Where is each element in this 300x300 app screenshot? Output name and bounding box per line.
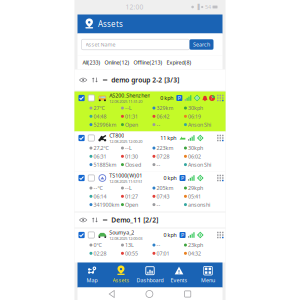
staticText: 07:01 — [156, 250, 169, 257]
staticText: 29kph — [188, 184, 203, 192]
staticText: 12.08.2025 12:00:03 — [109, 236, 142, 241]
button[interactable]: Events — [164, 266, 193, 284]
staticText: 12:00 — [125, 3, 143, 11]
staticText: 06:14 — [93, 193, 106, 200]
staticText: 23kph — [188, 241, 203, 249]
staticText: 54 — [205, 3, 211, 11]
staticText: 06:31 — [93, 153, 106, 160]
staticText: 12.08.2025 12:00:20 — [109, 139, 142, 144]
staticText: Open — [125, 121, 138, 128]
staticText: 11 kph — [160, 134, 176, 142]
staticText: --L — [125, 144, 132, 152]
staticText: 27,2°C — [93, 144, 108, 152]
staticText: 0 kph — [160, 94, 173, 102]
staticText: -- — [156, 161, 160, 168]
staticText: -- — [156, 201, 160, 208]
staticText: 205km — [156, 184, 173, 192]
staticText: Asset Name — [85, 41, 115, 48]
button[interactable]: Expired(8) — [166, 59, 191, 66]
staticText: 04:32 — [188, 250, 201, 257]
staticText: 12.08.2025 11:57:51 — [109, 179, 142, 184]
button[interactable]: demo group 2-2 [3/3] — [74, 69, 225, 90]
staticText: Map — [86, 277, 97, 284]
staticText: 06:19 — [188, 113, 201, 120]
staticText: P — [181, 174, 184, 182]
button[interactable]: Soumya_2 — [74, 228, 225, 262]
staticText: P — [181, 231, 184, 239]
staticText: Search — [193, 41, 210, 48]
staticText: Anson Shi — [188, 161, 211, 168]
button[interactable]: Online(12) — [104, 59, 129, 66]
staticText: 07:43 — [156, 193, 169, 200]
staticText: ▐ — [195, 4, 199, 10]
staticText: 00:55 — [125, 250, 138, 257]
staticText: All(233) — [82, 59, 100, 66]
staticText: Closed — [125, 161, 141, 168]
staticText: TS1000(W)01 — [109, 172, 142, 179]
button[interactable]: AS200_Shenzhen — [74, 91, 225, 131]
staticText: 04:48 — [93, 113, 106, 120]
staticText: Open — [125, 201, 138, 208]
staticText: ansonshi — [188, 201, 210, 208]
staticText: Menu — [201, 277, 215, 284]
staticText: 01:27 — [125, 193, 138, 200]
button[interactable]: Assets — [106, 266, 135, 284]
staticText: 0 kph — [164, 231, 177, 239]
button[interactable]: Menu — [193, 266, 222, 284]
staticText: Online(12) — [104, 59, 129, 66]
staticText: 13L — [125, 241, 134, 249]
staticText: ? — [211, 95, 213, 101]
staticText: Anson Shi — [188, 121, 211, 128]
button[interactable]: Dashboard — [135, 266, 164, 284]
staticText: 0°C — [93, 241, 101, 249]
staticText: Dashboard — [136, 277, 163, 284]
staticText: 341900km — [93, 201, 119, 208]
staticText: Soumya_2 — [109, 229, 134, 236]
staticText: 01:30 — [125, 153, 138, 160]
staticText: --L — [125, 104, 132, 112]
staticText: 30kph — [188, 144, 203, 152]
staticText: 01:31 — [125, 113, 138, 120]
staticText: --°C — [93, 184, 102, 192]
button[interactable]: Search — [189, 39, 213, 50]
staticText: 07:28 — [156, 153, 169, 160]
staticText: Expired(8) — [166, 59, 191, 66]
button[interactable]: Map — [77, 266, 106, 284]
staticText: -- — [156, 241, 160, 249]
staticText: 329km — [156, 104, 173, 112]
staticText: 12.08.2025 11:31:20 — [109, 99, 142, 104]
button[interactable]: Demo_11 [2/2] — [74, 212, 225, 227]
staticText: 02:28 — [93, 250, 106, 257]
staticText: 05:41 — [188, 193, 201, 200]
staticText: P — [178, 94, 181, 102]
staticText: 223km — [156, 144, 173, 152]
button[interactable]: All(233) — [82, 59, 100, 66]
staticText: Assets — [112, 277, 129, 284]
staticText: -- — [156, 121, 160, 128]
staticText: 06:42 — [156, 113, 169, 120]
staticText: --L — [125, 184, 132, 192]
staticText: 52996km — [93, 121, 116, 128]
staticText: 30kph — [188, 104, 203, 112]
button[interactable]: TS1000(W)01 — [74, 171, 225, 211]
staticText: AS200_Shenzhen — [109, 92, 150, 99]
staticText: demo group 2-2 [3/3] — [111, 76, 179, 84]
staticText: Assets — [98, 19, 123, 29]
staticText: 27°C — [93, 104, 104, 112]
staticText: Events — [170, 277, 187, 284]
staticText: Demo_11 [2/2] — [111, 216, 158, 224]
staticText: 06:02 — [188, 153, 201, 160]
button[interactable]: Offline(213) — [133, 59, 162, 66]
button[interactable]: CT800 — [74, 131, 225, 171]
staticText: 0 kph — [164, 174, 177, 182]
staticText: 51885km — [93, 161, 116, 168]
staticText: CT800 — [109, 132, 124, 139]
staticText: Offline(213) — [133, 59, 162, 66]
